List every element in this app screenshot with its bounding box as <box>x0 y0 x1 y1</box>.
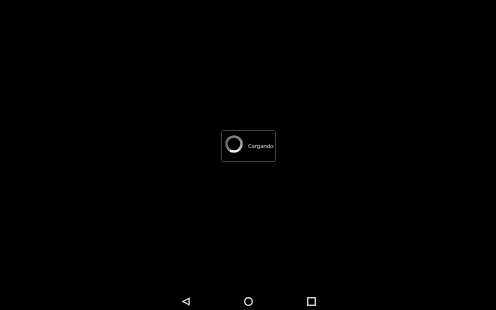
button[interactable]: Cargando <box>221 130 276 162</box>
staticText: Cargando <box>248 142 274 150</box>
button[interactable]: Home <box>239 292 257 310</box>
button[interactable]: Back <box>176 292 194 310</box>
button[interactable]: Recent apps <box>302 292 320 310</box>
